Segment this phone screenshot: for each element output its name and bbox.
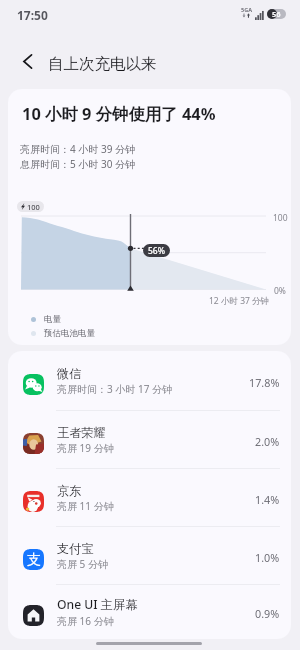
staticText: 预估电池电量 [44,328,95,339]
staticText: 0.9% [255,606,280,621]
button[interactable]: 京东 [8,469,291,527]
staticText: 5GA [241,6,252,13]
staticText: 京东 [57,483,82,498]
staticText: 微信 [57,366,82,381]
staticText: 王者荣耀 [57,425,106,440]
staticText: 支 [27,551,41,569]
staticText: 2.0% [255,434,280,449]
staticText: 100 [27,202,40,212]
staticText: 自上次充电以来 [48,54,157,74]
staticText: 亮屏 16 分钟 [57,614,114,628]
button[interactable]: 王者荣耀 [8,411,291,469]
staticText: 亮屏时间：4 小时 39 分钟 [20,142,135,156]
staticText: 10 小时 9 分钟使用了 44% [22,102,216,124]
staticText: 电量 [44,314,61,325]
button[interactable]: 微信 [8,351,291,411]
staticText: One UI 主屏幕 [57,596,138,613]
staticText: 56 [272,9,281,19]
staticText: 17:50 [17,7,48,23]
staticText: 支付宝 [57,541,94,556]
staticText: 亮屏 5 分钟 [57,557,108,571]
staticText: 0% [274,285,286,297]
staticText: 100 [273,212,288,224]
staticText: 12 小时 37 分钟 [209,295,270,307]
staticText: 亮屏时间：3 小时 17 分钟 [57,382,172,396]
staticText: 亮屏 19 分钟 [57,441,114,455]
staticText: 息屏时间：5 小时 30 分钟 [20,157,135,171]
staticText: 1.4% [255,492,280,507]
staticText: 亮屏 11 分钟 [57,499,114,513]
button[interactable]: Back [14,48,40,74]
staticText: 17.8% [249,375,280,390]
staticText: 1.0% [255,550,280,565]
staticText: 56% [148,245,165,257]
button[interactable]: One UI 主屏幕 [8,585,291,639]
button[interactable]: 支 [8,527,291,585]
